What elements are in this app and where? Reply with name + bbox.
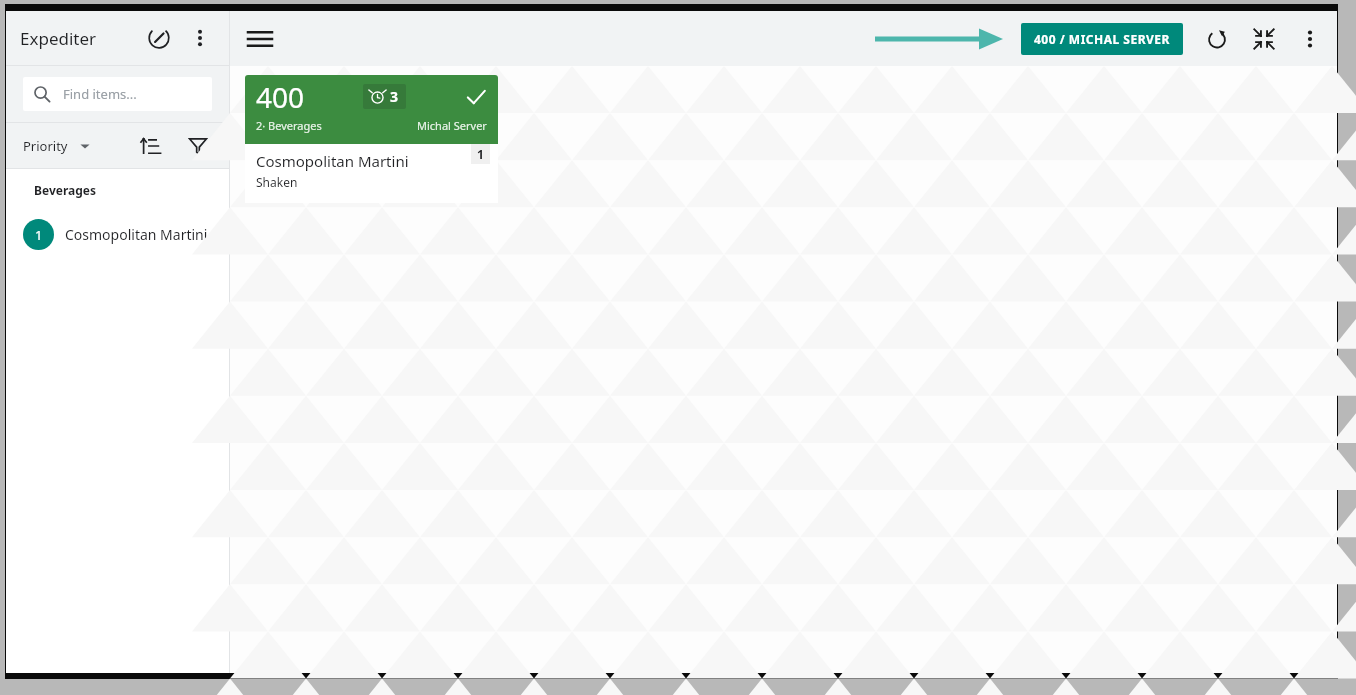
- staticText: 2· Beverages: [256, 118, 322, 133]
- button[interactable]: Find items...: [23, 77, 212, 111]
- staticText: Find items...: [63, 85, 137, 103]
- staticText: 400 / MICHAL SERVER: [1034, 31, 1170, 47]
- button[interactable]: Performance: [143, 22, 175, 54]
- button[interactable]: 400 / MICHAL SERVER: [1021, 23, 1183, 55]
- staticText: 3: [390, 87, 399, 106]
- staticText: Beverages: [34, 182, 97, 198]
- staticText: Priority: [23, 137, 68, 155]
- button[interactable]: 1: [6, 215, 229, 254]
- staticText: Expediter: [20, 27, 97, 50]
- button[interactable]: Sort: [133, 129, 167, 163]
- staticText: 400: [256, 78, 305, 116]
- button[interactable]: Filter: [181, 129, 215, 163]
- button[interactable]: Collapse: [1246, 21, 1282, 57]
- staticText: Shaken: [256, 174, 298, 190]
- staticText: Cosmopolitan Martini: [256, 151, 409, 171]
- staticText: Cosmopolitan Martini: [65, 225, 208, 244]
- button[interactable]: 400: [245, 75, 498, 203]
- button[interactable]: More options: [185, 23, 215, 53]
- staticText: 1: [35, 226, 43, 244]
- button[interactable]: Menu: [240, 19, 280, 59]
- button[interactable]: Refresh: [1199, 21, 1235, 57]
- button[interactable]: Priority: [6, 131, 101, 161]
- button[interactable]: More options: [1293, 22, 1327, 56]
- staticText: Michal Server: [417, 118, 487, 133]
- staticText: 1: [477, 146, 484, 162]
